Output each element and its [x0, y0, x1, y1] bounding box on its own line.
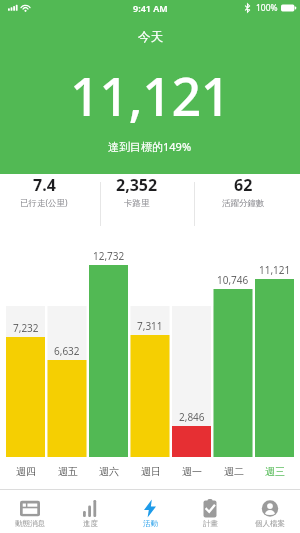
button[interactable]: 週一: [171, 464, 212, 478]
staticText: 週三: [265, 465, 285, 478]
staticText: 2,846: [179, 410, 205, 424]
staticText: 62: [234, 174, 253, 196]
staticText: 已行走(公里): [20, 197, 68, 209]
staticText: 11,121: [70, 60, 230, 130]
staticText: 活動: [143, 519, 158, 528]
staticText: 達到目標的149%: [108, 139, 192, 154]
staticText: 10,746: [217, 273, 249, 287]
staticText: 週二: [224, 465, 244, 478]
staticText: 週六: [99, 465, 119, 478]
button[interactable]: 週四: [5, 464, 46, 478]
staticText: 計畫: [203, 519, 218, 528]
staticText: 進度: [83, 519, 98, 528]
staticText: 週五: [58, 465, 78, 478]
button[interactable]: 週日: [130, 464, 171, 478]
staticText: 週日: [141, 465, 161, 478]
button[interactable]: 活動: [120, 490, 180, 533]
staticText: 週一: [182, 465, 202, 478]
staticText: 動態消息: [15, 519, 45, 528]
staticText: 6,632: [54, 344, 80, 358]
button[interactable]: 2,352: [92, 172, 182, 198]
staticText: 7,311: [137, 319, 163, 333]
button[interactable]: 62: [193, 172, 293, 198]
staticText: 活躍分鐘數: [222, 198, 265, 209]
staticText: 今天: [138, 29, 163, 45]
staticText: 11,121: [259, 263, 291, 277]
button[interactable]: 個人檔案: [240, 490, 300, 533]
button[interactable]: 週三: [254, 464, 295, 478]
button[interactable]: 週六: [88, 464, 129, 478]
button[interactable]: 週五: [47, 464, 88, 478]
staticText: 12,732: [93, 249, 125, 263]
staticText: 2,352: [116, 174, 158, 196]
staticText: 7.4: [33, 174, 56, 196]
button[interactable]: 動態消息: [0, 490, 60, 533]
button[interactable]: 週二: [213, 464, 254, 478]
staticText: 個人檔案: [255, 519, 285, 528]
button[interactable]: 進度: [60, 490, 120, 533]
staticText: 7,232: [13, 321, 39, 335]
staticText: 週四: [16, 465, 36, 478]
staticText: 9:41 AM: [133, 2, 168, 14]
button[interactable]: 7.4: [0, 172, 92, 198]
staticText: 100%: [256, 2, 278, 14]
staticText: 卡路里: [124, 198, 150, 209]
button[interactable]: 計畫: [180, 490, 240, 533]
